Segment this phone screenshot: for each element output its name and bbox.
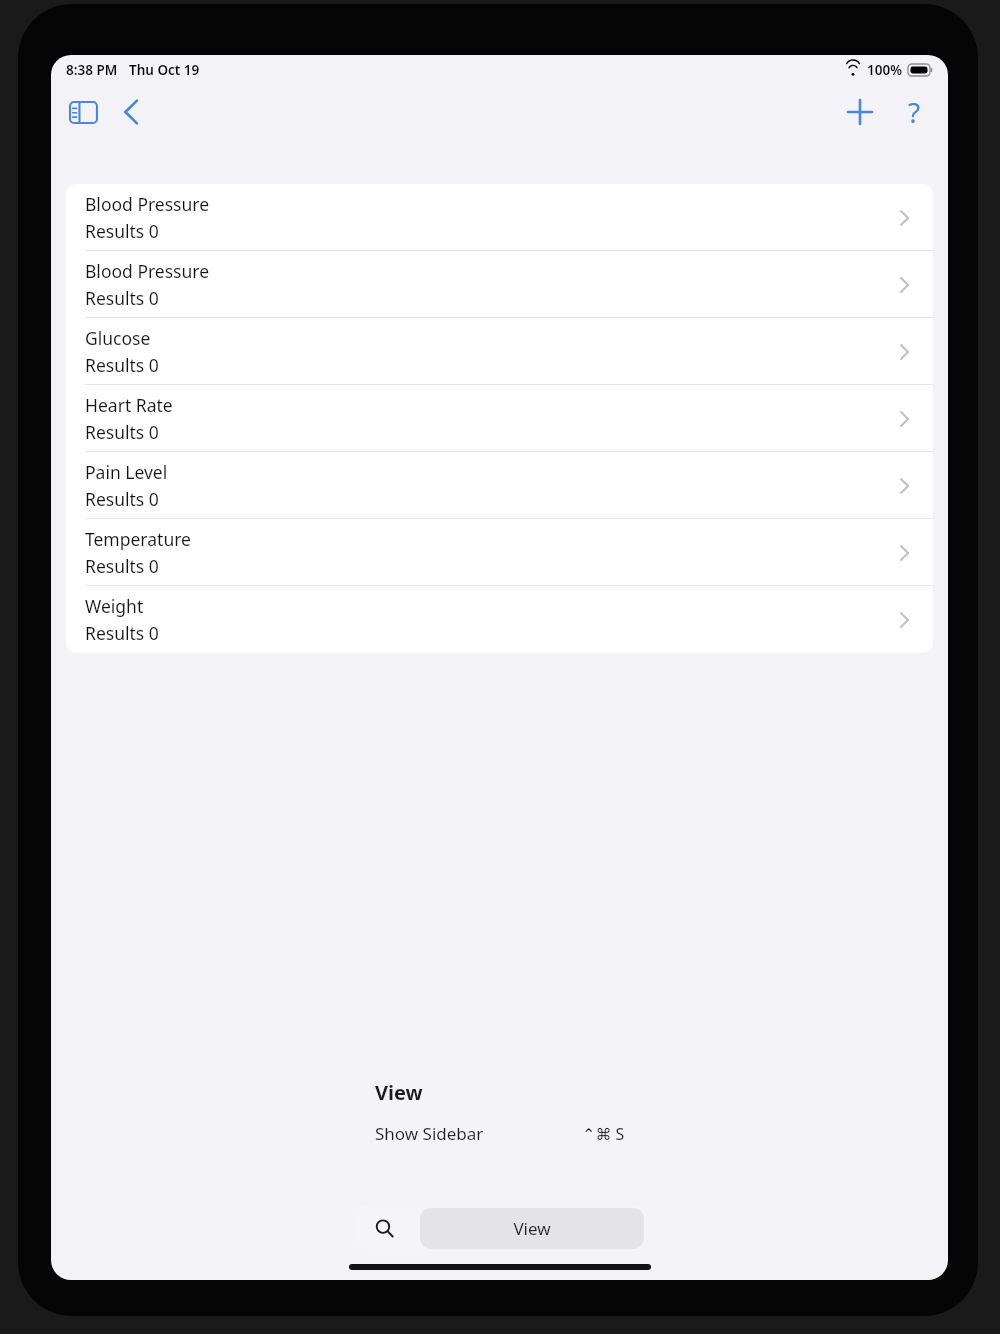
button[interactable]: Search: [353, 1205, 647, 1252]
staticText: Pain Level: [85, 460, 168, 484]
staticText: Blood Pressure: [85, 192, 210, 216]
staticText: Glucose: [85, 326, 151, 350]
staticText: View: [513, 1217, 551, 1240]
button[interactable]: Pain Level: [66, 452, 933, 519]
button[interactable]: Blood Pressure: [66, 184, 933, 251]
button[interactable]: Temperature: [66, 519, 933, 586]
staticText: Weight: [85, 594, 144, 618]
button[interactable]: View: [420, 1208, 644, 1249]
button[interactable]: Heart Rate: [66, 385, 933, 452]
staticText: ⌃⌘ S: [582, 1123, 625, 1145]
staticText: Heart Rate: [85, 393, 173, 417]
staticText: 8:38 PM: [66, 61, 118, 79]
button[interactable]: Blood Pressure: [66, 251, 933, 318]
staticText: Temperature: [85, 527, 191, 551]
button[interactable]: Weight: [66, 586, 933, 653]
staticText: Results 0: [85, 353, 159, 377]
button[interactable]: Help: [890, 88, 938, 136]
staticText: 100%: [867, 61, 902, 79]
staticText: Results 0: [85, 487, 159, 511]
staticText: View: [375, 1079, 423, 1106]
staticText: Thu Oct 19: [129, 61, 200, 79]
staticText: Results 0: [85, 286, 159, 310]
staticText: Results 0: [85, 621, 159, 645]
staticText: Results 0: [85, 219, 159, 243]
button[interactable]: Back: [107, 88, 155, 136]
staticText: Show Sidebar: [375, 1122, 484, 1145]
button[interactable]: Add: [836, 88, 884, 136]
button[interactable]: Glucose: [66, 318, 933, 385]
staticText: Results 0: [85, 554, 159, 578]
staticText: ?: [908, 93, 921, 131]
other: Search: [375, 1219, 394, 1238]
staticText: Results 0: [85, 420, 159, 444]
staticText: Blood Pressure: [85, 259, 210, 283]
button[interactable]: Show Sidebar: [59, 88, 107, 136]
button[interactable]: Show Sidebar: [375, 1122, 625, 1145]
